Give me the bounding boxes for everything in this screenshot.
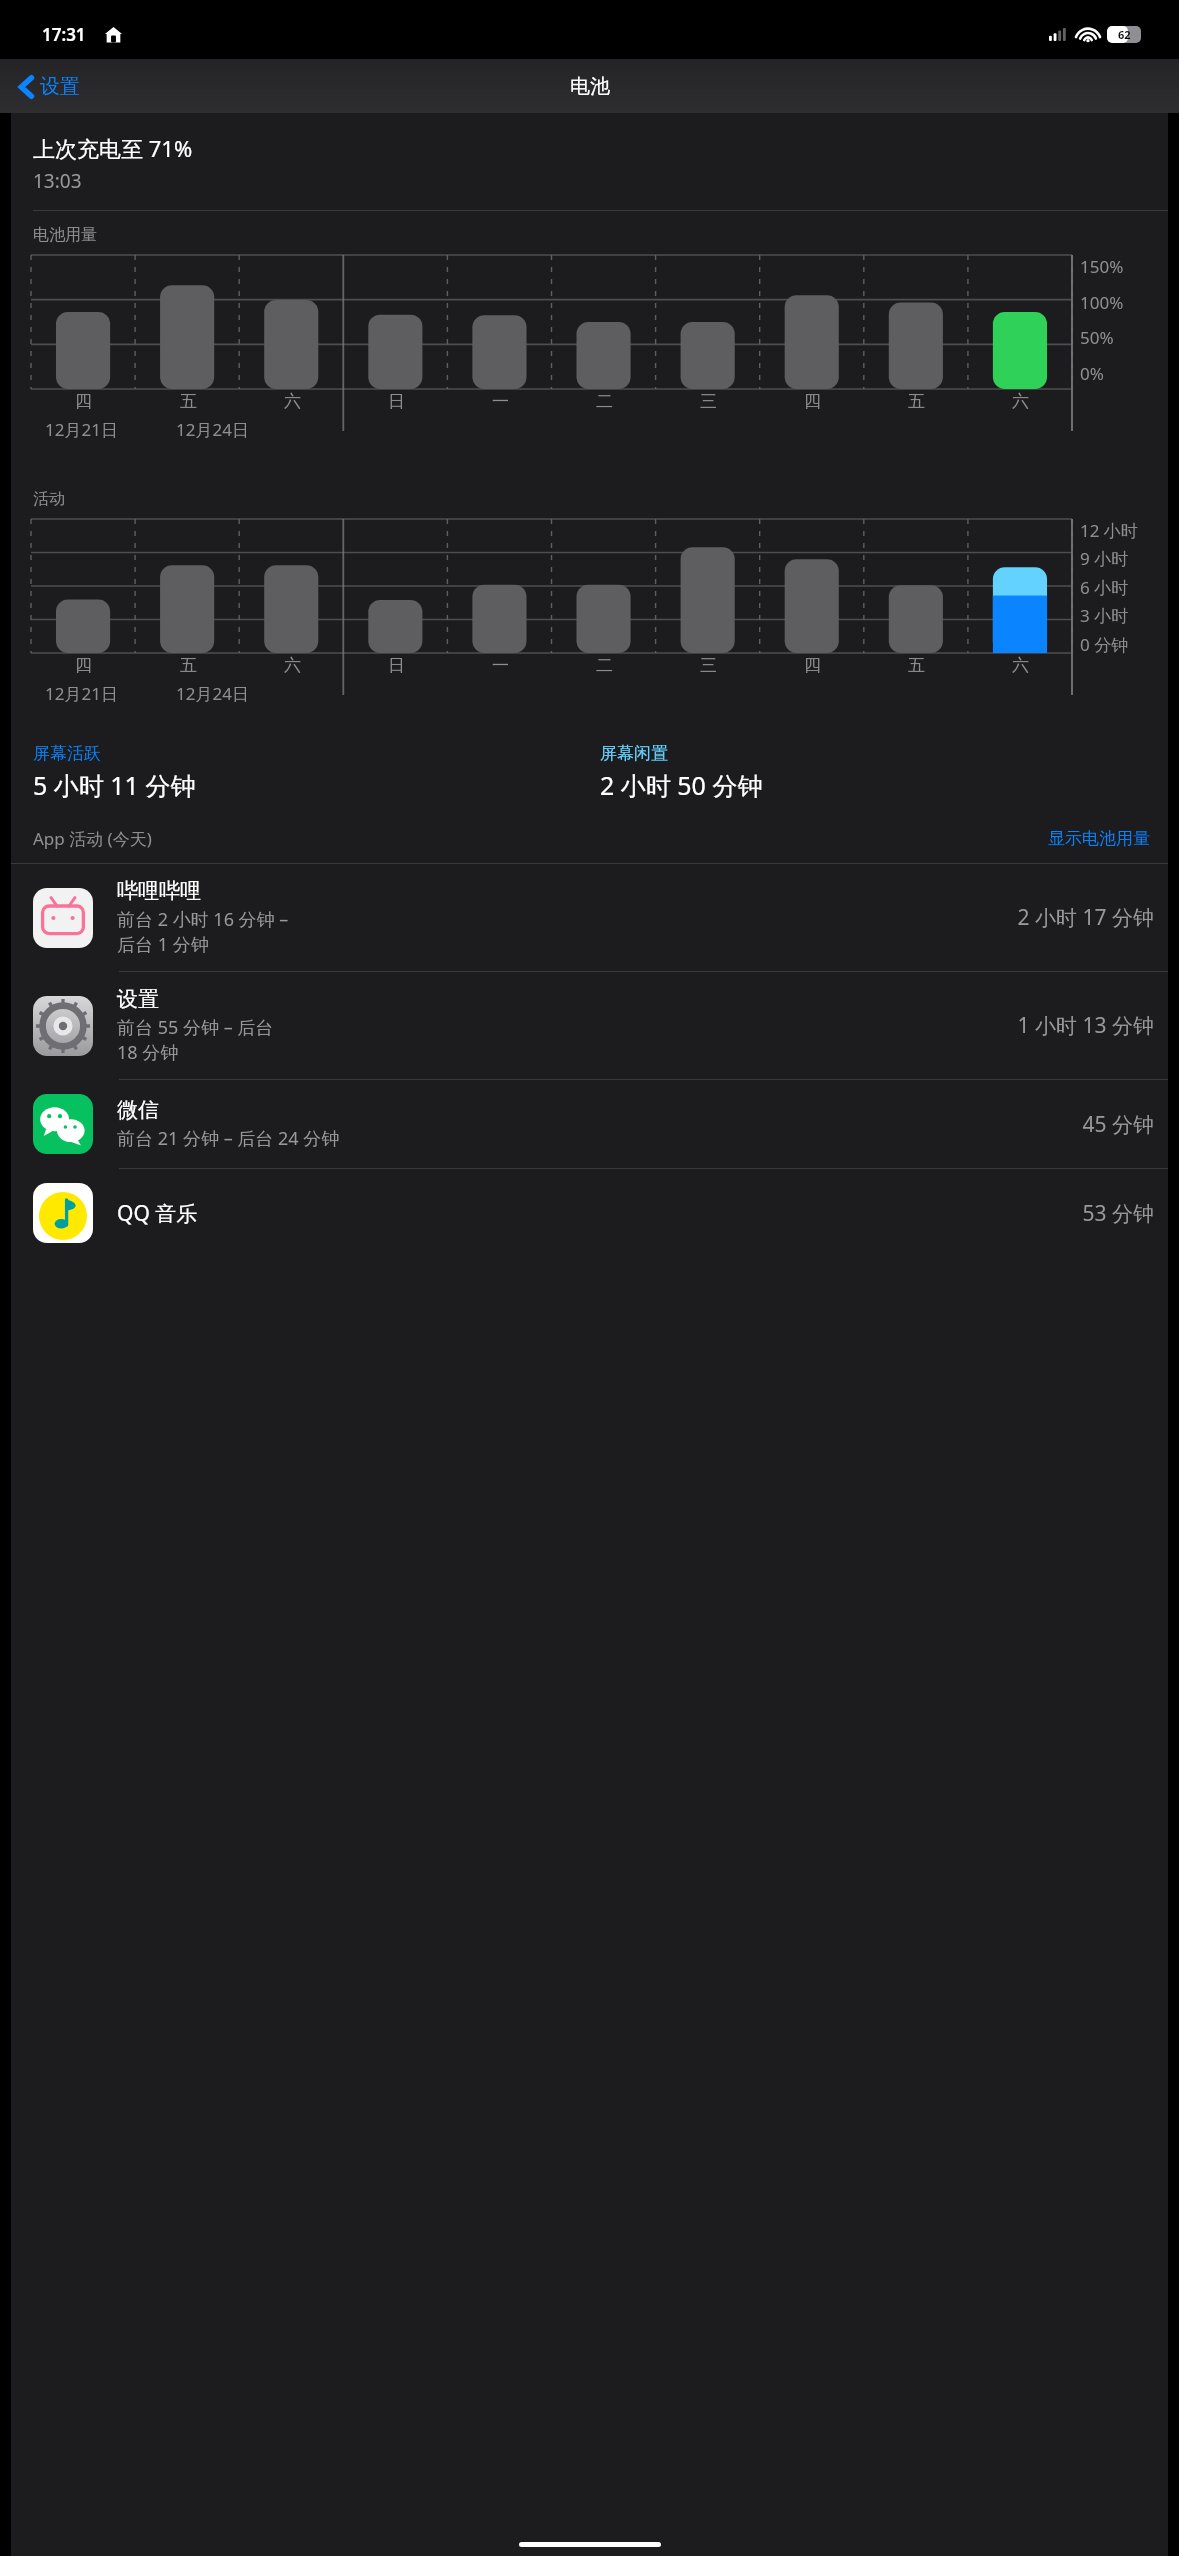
staticText: 12月21日 [45,418,118,441]
staticText: 1 小时 13 分钟 [1017,1011,1154,1040]
staticText: 2 小时 50 分钟 [600,768,763,802]
staticText: 五 [180,655,197,676]
button[interactable]: 设置 [11,972,1168,1079]
staticText: 微信 [117,1097,159,1123]
other: 哔哩哔哩 [33,888,93,948]
other: 设置 [33,996,93,1056]
staticText: 12月24日 [176,682,249,705]
staticText: 上次充电至 71% [33,133,193,163]
staticText: 六 [1012,391,1029,412]
staticText: 三 [700,391,717,412]
button[interactable]: QQ 音乐 [11,1169,1168,1257]
staticText: 六 [284,655,301,676]
staticText: 18 分钟 [117,1040,179,1065]
staticText: 一 [492,655,509,676]
other: 微信 [33,1094,93,1154]
staticText: 53 分钟 [1082,1199,1154,1228]
button[interactable]: 设置 [14,70,86,103]
staticText: 四 [804,655,821,676]
staticText: 电池用量 [33,225,97,245]
staticText: 一 [492,391,509,412]
staticText: 五 [908,391,925,412]
staticText: 六 [284,391,301,412]
staticText: 45 分钟 [1082,1110,1154,1139]
staticText: 屏幕闲置 [600,743,668,764]
staticText: 二 [596,391,613,412]
button[interactable]: 屏幕闲置 [600,743,1168,802]
staticText: 12 小时 [1080,519,1138,542]
staticText: 前台 55 分钟 – 后台 [117,1015,274,1040]
staticText: App 活动 (今天) [33,827,152,850]
staticText: 三 [700,655,717,676]
staticText: 日 [388,391,405,412]
staticText: 17:31 [42,23,86,46]
button[interactable]: 屏幕活跃 [33,743,600,802]
staticText: 150% [1080,255,1124,278]
staticText: 0% [1080,362,1104,385]
staticText: 50% [1080,326,1114,349]
staticText: QQ 音乐 [117,1199,198,1228]
staticText: 12月21日 [45,682,118,705]
staticText: 四 [75,655,92,676]
staticText: 2 小时 17 分钟 [1017,903,1154,932]
staticText: 前台 21 分钟 – 后台 24 分钟 [117,1126,340,1151]
staticText: 四 [75,391,92,412]
staticText: 日 [388,655,405,676]
staticText: 前台 2 小时 16 分钟 – [117,907,289,932]
staticText: 电池 [570,74,610,99]
other: QQ 音乐 [33,1183,93,1243]
staticText: 后台 1 分钟 [117,932,209,957]
staticText: 屏幕活跃 [33,743,101,764]
staticText: 二 [596,655,613,676]
staticText: 3 小时 [1080,604,1129,627]
button[interactable]: 哔哩哔哩 [11,864,1168,971]
staticText: 9 小时 [1080,547,1129,570]
staticText: 0 分钟 [1080,633,1129,656]
staticText: 100% [1080,291,1124,314]
staticText: 设置 [117,986,159,1012]
staticText: 五 [180,391,197,412]
staticText: 哔哩哔哩 [117,878,201,904]
staticText: 显示电池用量 [1048,828,1150,849]
staticText: 13:03 [33,168,82,194]
staticText: 五 [908,655,925,676]
staticText: 6 小时 [1080,576,1129,599]
button[interactable]: 显示电池用量 [1044,824,1154,853]
staticText: 12月24日 [176,418,249,441]
staticText: 四 [804,391,821,412]
staticText: 设置 [40,74,80,99]
staticText: 活动 [33,489,65,509]
staticText: 六 [1012,655,1029,676]
staticText: 62 [1118,27,1131,42]
staticText: 5 小时 11 分钟 [33,768,196,802]
button[interactable]: 微信 [11,1080,1168,1168]
